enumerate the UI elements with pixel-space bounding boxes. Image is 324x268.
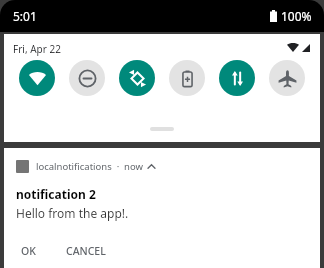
button[interactable]: localnotifications · now	[4, 148, 320, 268]
button[interactable]: OK	[16, 240, 41, 262]
button[interactable]: Expand quick settings	[150, 127, 174, 131]
button[interactable]: Mobile data	[219, 60, 255, 96]
staticText: notification 2	[16, 186, 96, 202]
staticText: Hello from the app!.	[16, 205, 129, 221]
staticText: localnotifications · now	[36, 160, 144, 173]
button[interactable]: CANCEL	[61, 240, 111, 262]
staticText: 5:01	[13, 8, 37, 24]
staticText: Fri, Apr 22	[13, 42, 61, 56]
staticText: OK	[21, 244, 36, 258]
staticText: 100%	[281, 8, 312, 24]
button[interactable]: Airplane mode	[269, 60, 305, 96]
button[interactable]: Auto rotate	[119, 60, 155, 96]
staticText: CANCEL	[66, 244, 106, 258]
button[interactable]: Wi-Fi	[19, 60, 55, 96]
button[interactable]: Battery saver	[169, 60, 205, 96]
button[interactable]: Do not disturb	[69, 60, 105, 96]
